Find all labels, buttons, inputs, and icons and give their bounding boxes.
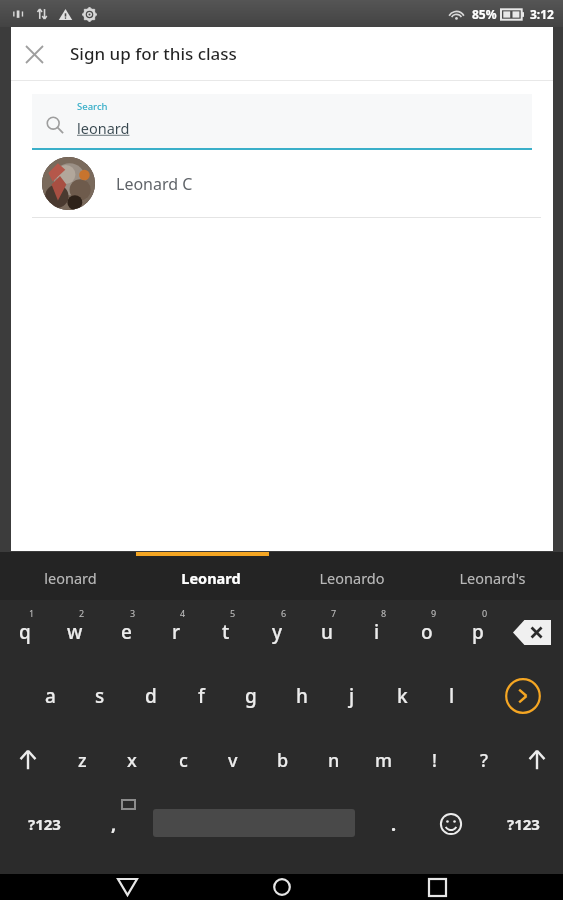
staticText: 8: [381, 607, 387, 619]
staticText: k: [397, 683, 408, 709]
staticText: m: [375, 748, 393, 773]
button[interactable]: b: [259, 728, 307, 792]
button[interactable]: o: [403, 600, 451, 664]
button[interactable]: h: [278, 664, 326, 728]
staticText: d: [145, 683, 157, 709]
staticText: v: [228, 748, 238, 773]
button[interactable]: Backspace: [510, 618, 554, 646]
button[interactable]: ?123: [493, 792, 553, 856]
button[interactable]: ,: [90, 792, 138, 856]
staticText: ,: [111, 812, 117, 837]
staticText: t: [222, 619, 230, 645]
staticText: Leonard's: [459, 568, 526, 588]
staticText: Leonardo: [319, 568, 385, 588]
button[interactable]: z: [58, 728, 106, 792]
staticText: ?123: [28, 814, 61, 834]
button[interactable]: ?123: [16, 792, 72, 856]
button[interactable]: .: [370, 792, 418, 856]
staticText: h: [296, 683, 308, 709]
staticText: o: [421, 619, 433, 645]
button[interactable]: m: [360, 728, 408, 792]
staticText: r: [172, 619, 181, 645]
staticText: e: [121, 619, 132, 645]
button[interactable]: i: [353, 600, 401, 664]
button[interactable]: leonard: [0, 556, 140, 600]
staticText: 7: [331, 607, 337, 619]
staticText: x: [127, 748, 137, 773]
staticText: Leonard: [181, 568, 241, 588]
staticText: 0: [482, 607, 488, 619]
staticText: 9: [431, 607, 437, 619]
staticText: 1: [29, 607, 35, 619]
button[interactable]: d: [127, 664, 175, 728]
button[interactable]: l: [428, 664, 476, 728]
button[interactable]: Recents: [408, 874, 466, 900]
staticText: p: [472, 619, 484, 645]
button[interactable]: r: [152, 600, 200, 664]
button[interactable]: Back: [98, 874, 156, 900]
button[interactable]: u: [303, 600, 351, 664]
staticText: 2: [79, 607, 85, 619]
button[interactable]: v: [209, 728, 257, 792]
staticText: c: [179, 748, 188, 773]
staticText: b: [277, 748, 289, 773]
button[interactable]: Leonard C: [11, 150, 553, 217]
staticText: j: [349, 683, 355, 709]
button[interactable]: q: [1, 600, 49, 664]
button[interactable]: !: [410, 728, 458, 792]
staticText: Sign up for this class: [70, 42, 237, 65]
button[interactable]: Leonard: [140, 556, 281, 600]
button[interactable]: Home: [253, 874, 311, 900]
staticText: .: [391, 812, 397, 837]
button[interactable]: g: [227, 664, 275, 728]
button[interactable]: Close: [11, 31, 57, 77]
button[interactable]: a: [26, 664, 74, 728]
staticText: !: [432, 748, 437, 773]
staticText: 3: [130, 607, 136, 619]
staticText: leonard: [44, 568, 97, 588]
button[interactable]: ?: [460, 728, 508, 792]
staticText: u: [321, 619, 333, 645]
staticText: n: [328, 748, 340, 773]
staticText: z: [78, 748, 87, 773]
button[interactable]: Enter: [495, 664, 551, 728]
button[interactable]: Leonard's: [422, 556, 563, 600]
staticText: f: [198, 683, 205, 709]
button[interactable]: n: [310, 728, 358, 792]
button[interactable]: e: [102, 600, 150, 664]
button[interactable]: f: [177, 664, 225, 728]
button[interactable]: Leonardo: [281, 556, 422, 600]
button[interactable]: c: [159, 728, 207, 792]
button[interactable]: j: [328, 664, 376, 728]
button[interactable]: y: [253, 600, 301, 664]
staticText: q: [19, 619, 31, 645]
staticText: 5: [230, 607, 236, 619]
staticText: Leonard C: [116, 173, 193, 195]
button[interactable]: Emoji: [427, 792, 475, 856]
staticText: i: [374, 619, 380, 645]
button[interactable]: x: [108, 728, 156, 792]
staticText: a: [45, 683, 56, 709]
staticText: g: [245, 683, 257, 709]
staticText: 6: [281, 607, 287, 619]
staticText: w: [67, 619, 83, 645]
staticText: leonard: [77, 118, 130, 138]
button[interactable]: Shift: [513, 728, 561, 792]
button[interactable]: t: [202, 600, 250, 664]
staticText: 85%: [472, 6, 497, 22]
staticText: y: [272, 619, 283, 645]
staticText: 3:12: [530, 6, 554, 22]
button[interactable]: s: [76, 664, 124, 728]
staticText: ?: [480, 748, 489, 773]
button[interactable]: w: [51, 600, 99, 664]
button[interactable]: k: [378, 664, 426, 728]
button[interactable]: Shift: [4, 728, 52, 792]
staticText: s: [95, 683, 105, 709]
button[interactable]: p: [454, 600, 502, 664]
staticText: ?123: [507, 814, 540, 834]
staticText: l: [449, 683, 455, 709]
staticText: 4: [180, 607, 186, 619]
staticText: Search: [77, 100, 108, 113]
button[interactable]: Search: [32, 94, 532, 148]
